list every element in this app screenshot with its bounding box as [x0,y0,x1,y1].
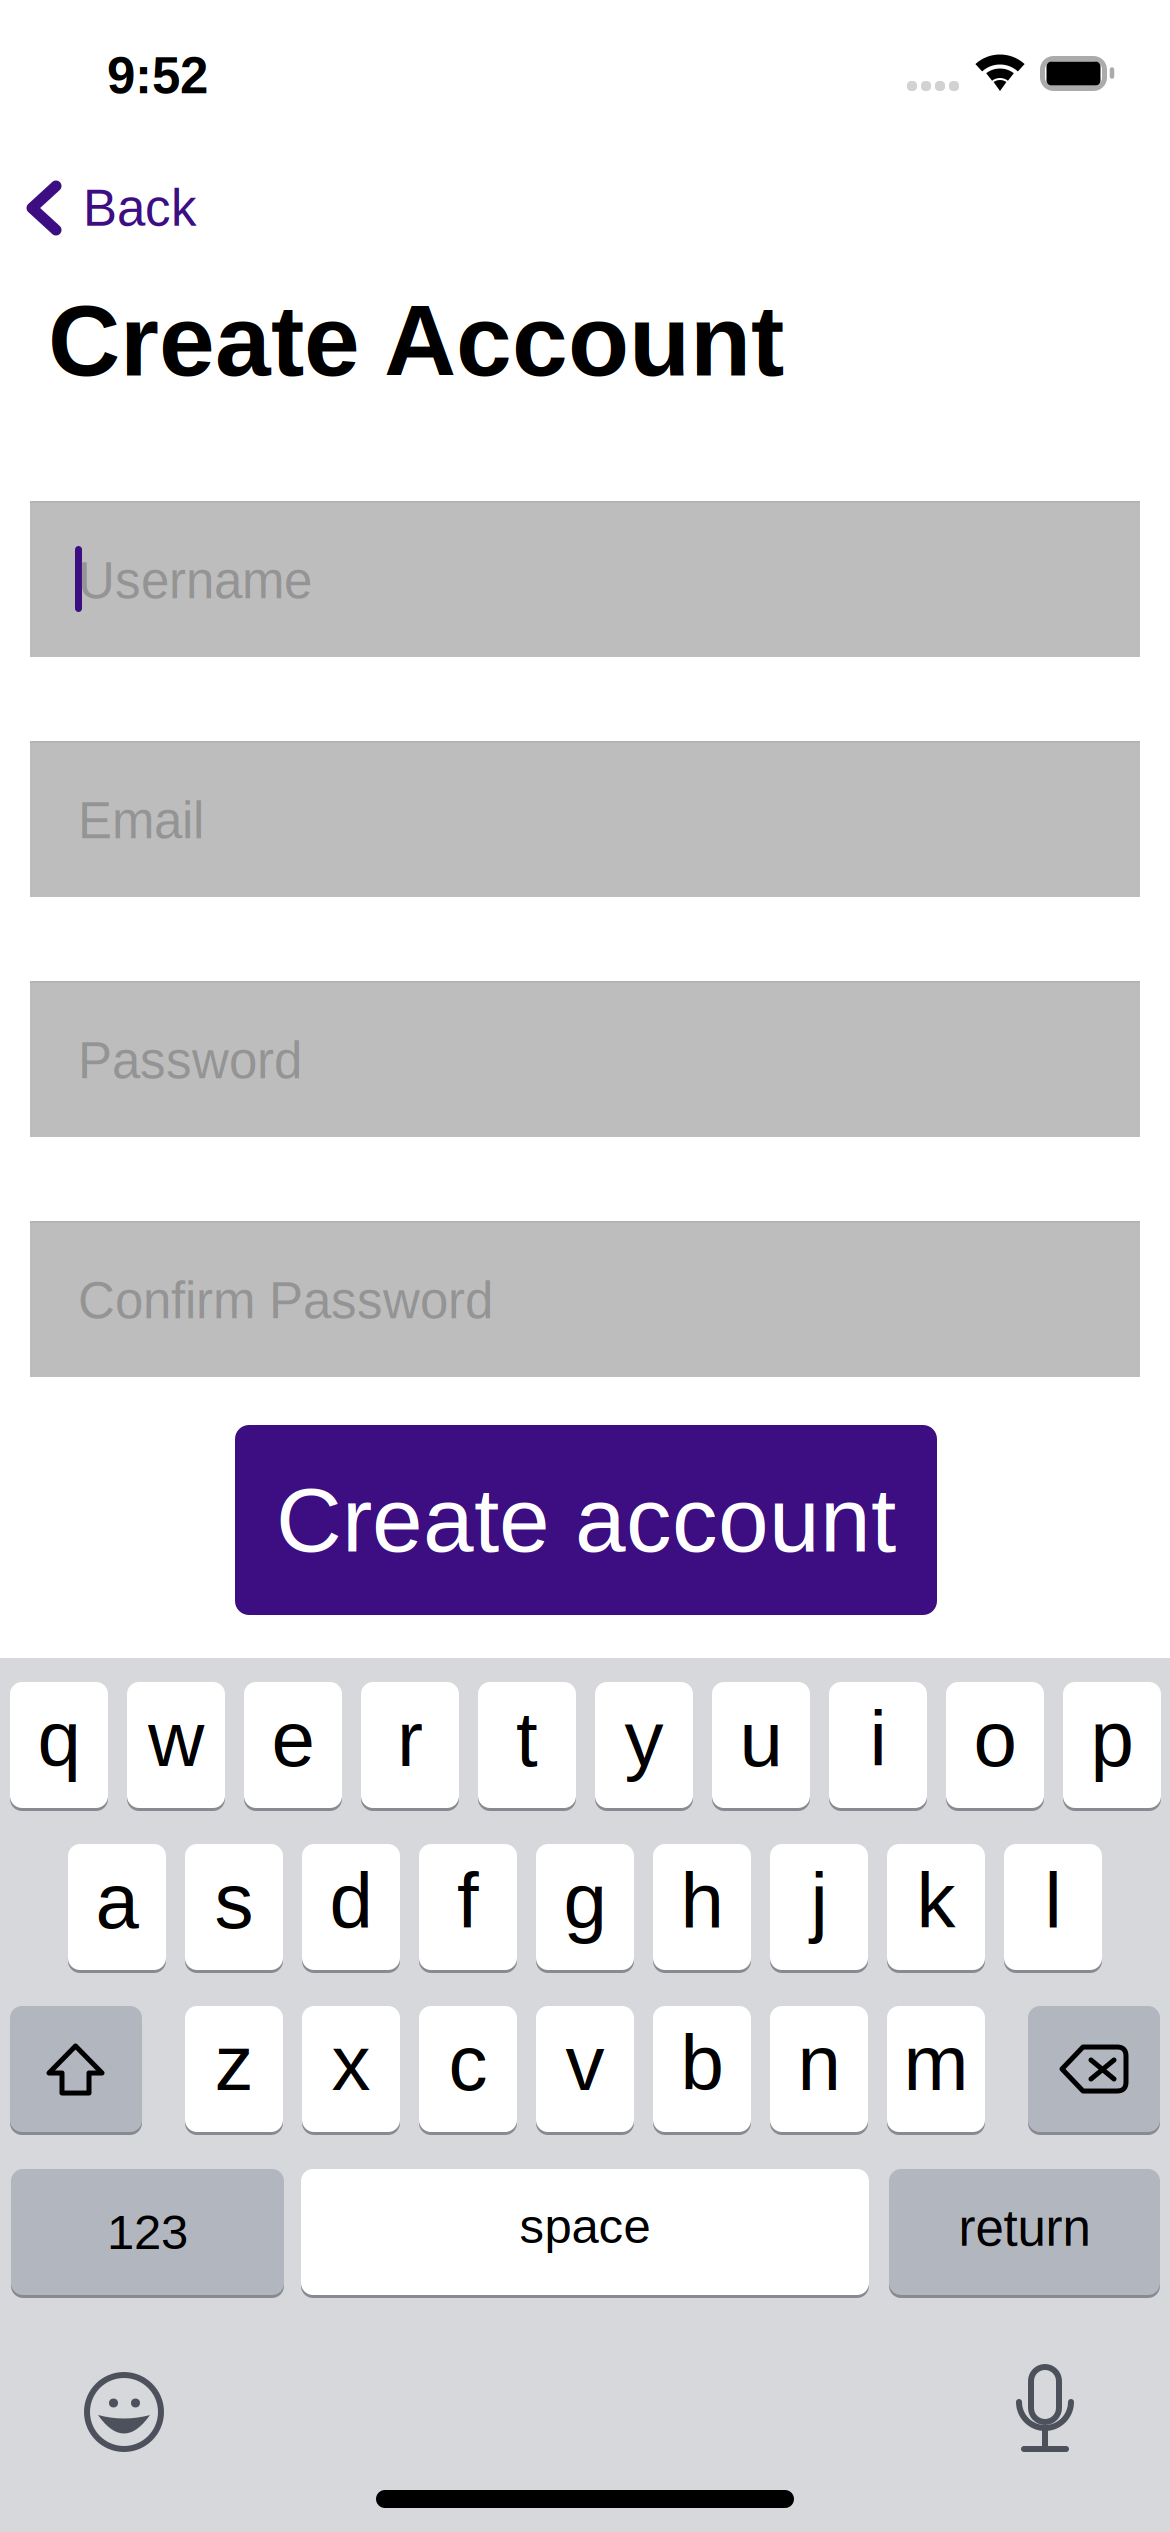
staticText: a [95,1857,138,1944]
staticText: Confirm Password [78,1272,493,1329]
staticText: Create account [276,1469,896,1571]
button[interactable]: d [302,1844,400,1973]
staticText: p [1090,1695,1133,1782]
staticText: z [214,2019,253,2106]
staticText: i [869,1695,886,1782]
staticText: e [271,1695,314,1782]
button[interactable]: q [10,1682,108,1811]
button[interactable]: g [536,1844,634,1973]
button[interactable]: p [1063,1682,1161,1811]
button[interactable]: i [829,1682,927,1811]
staticText: Password [78,1032,302,1089]
staticText: t [516,1695,538,1782]
button[interactable]: a [68,1844,166,1973]
button[interactable]: e [244,1682,342,1811]
button[interactable]: Shift [10,2006,142,2135]
staticText: 123 [107,2205,188,2259]
button[interactable]: c [419,2006,517,2135]
staticText: k [916,1857,955,1944]
button[interactable]: r [361,1682,459,1811]
button[interactable]: Create account [235,1425,937,1615]
staticText: d [329,1857,372,1944]
staticText: q [37,1695,80,1782]
button[interactable]: Back [11,166,271,250]
staticText: Back [83,179,197,236]
button[interactable]: n [770,2006,868,2135]
button[interactable]: Dictation [1016,2367,1074,2452]
button[interactable]: m [887,2006,985,2135]
staticText: o [973,1695,1016,1782]
button[interactable]: Password [30,981,1140,1137]
staticText: j [810,1857,827,1944]
staticText: u [739,1695,782,1782]
button[interactable]: y [595,1682,693,1811]
button[interactable]: Username [30,501,1140,657]
button[interactable]: 123 [11,2169,284,2298]
staticText: f [457,1857,479,1944]
staticText: b [680,2019,723,2106]
staticText: space [519,2199,650,2253]
button[interactable]: o [946,1682,1044,1811]
button[interactable]: v [536,2006,634,2135]
staticText: s [214,1857,253,1944]
button[interactable]: u [712,1682,810,1811]
staticText: r [397,1695,423,1782]
button[interactable]: s [185,1844,283,1973]
staticText: h [680,1857,723,1944]
button[interactable]: Delete [1028,2006,1160,2135]
button[interactable]: t [478,1682,576,1811]
button[interactable]: h [653,1844,751,1973]
button[interactable]: j [770,1844,868,1973]
staticText: y [624,1695,663,1782]
button[interactable]: Email [30,741,1140,897]
button[interactable]: space [301,2169,869,2298]
staticText: Username [78,552,312,609]
button[interactable]: z [185,2006,283,2135]
staticText: v [565,2019,604,2106]
button[interactable]: return [889,2169,1160,2298]
button[interactable]: x [302,2006,400,2135]
staticText: l [1044,1857,1061,1944]
staticText: x [331,2019,370,2106]
staticText: c [448,2019,487,2106]
staticText: 9:52 [107,47,208,104]
staticText: m [903,2019,968,2106]
staticText: return [958,2199,1090,2256]
button[interactable]: w [127,1682,225,1811]
button[interactable]: Confirm Password [30,1221,1140,1377]
button[interactable]: b [653,2006,751,2135]
button[interactable]: l [1004,1844,1102,1973]
staticText: w [148,1695,204,1782]
button[interactable]: f [419,1844,517,1973]
staticText: n [797,2019,840,2106]
staticText: Email [78,792,204,849]
button[interactable]: Emoji [84,2372,164,2452]
staticText: Create Account [48,285,784,397]
staticText: g [563,1857,606,1944]
button[interactable]: k [887,1844,985,1973]
